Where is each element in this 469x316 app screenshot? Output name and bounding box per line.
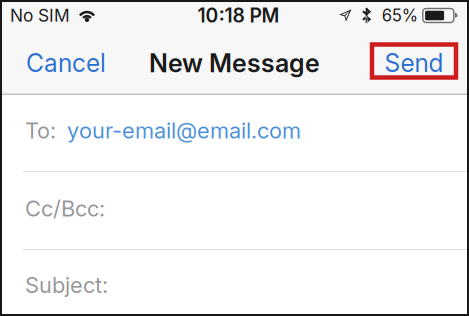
button[interactable]: Cc/Bcc: [0,172,469,250]
button[interactable]: Subject: [0,250,469,316]
staticText: New Message [149,48,320,78]
staticText: Send [384,48,443,78]
staticText: 10:18 PM [197,4,279,27]
button[interactable]: To: [0,95,469,172]
staticText: Subject: [25,272,108,298]
staticText: No SIM [10,5,70,26]
staticText: Cc/Bcc: [25,195,105,222]
staticText: To: [25,117,56,144]
button[interactable]: Send [372,44,456,81]
button[interactable]: Cancel [16,39,116,87]
staticText: your-email@email.com [67,117,301,144]
staticText: 65% [382,5,418,26]
staticText: Cancel [26,48,106,78]
